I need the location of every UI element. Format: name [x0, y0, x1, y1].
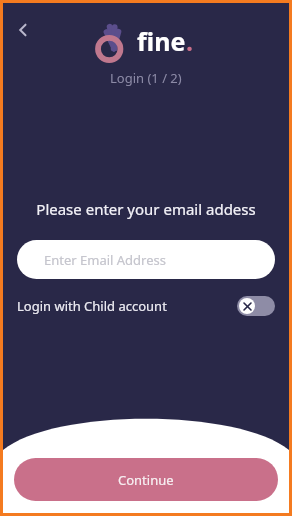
staticText: fine	[137, 24, 186, 58]
button[interactable]: Enter Email Address	[17, 240, 275, 279]
staticText: Enter Email Address	[44, 251, 166, 269]
staticText: Continue	[118, 471, 174, 489]
staticText: Login (1 / 2)	[110, 69, 182, 87]
staticText: Please enter your email addess	[17, 199, 275, 219]
staticText: Login with Child account	[17, 297, 167, 315]
staticText: .	[186, 24, 194, 58]
button[interactable]: Back	[9, 16, 37, 44]
button[interactable]: Continue	[14, 458, 278, 501]
button[interactable]: Login with Child account	[17, 296, 275, 316]
